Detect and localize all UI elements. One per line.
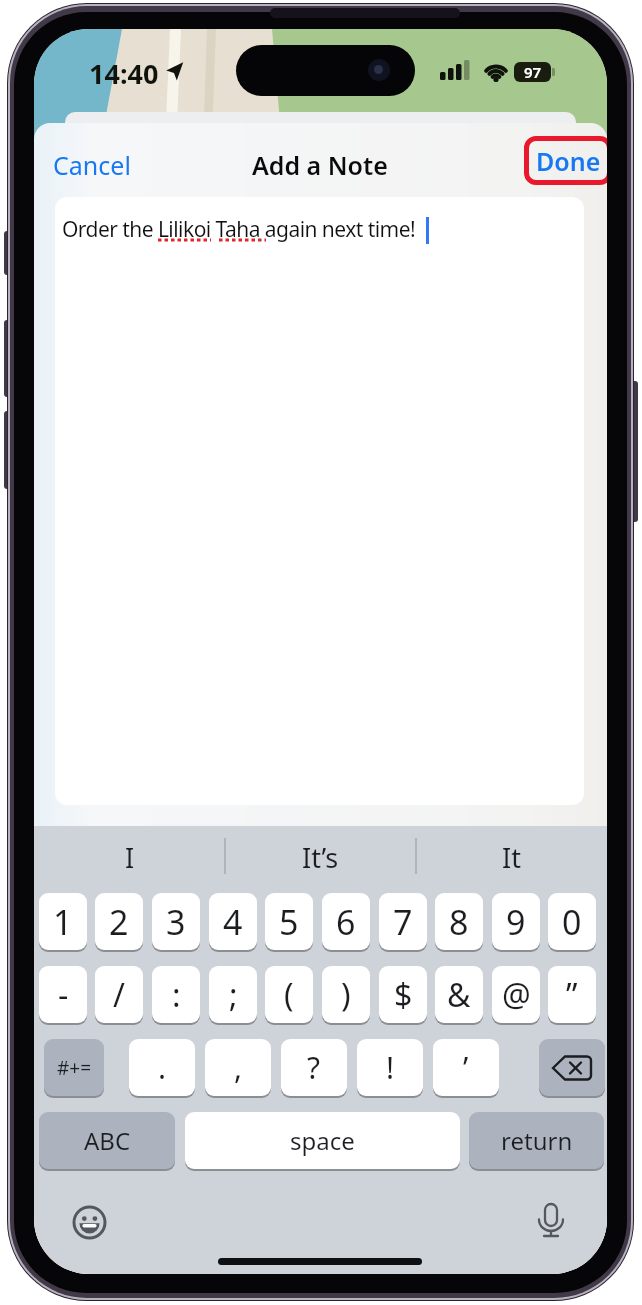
button[interactable]: space <box>185 1112 460 1169</box>
button[interactable]: / <box>95 966 143 1023</box>
button[interactable]: ( <box>265 966 313 1023</box>
staticText: 6 <box>336 899 356 945</box>
staticText: & <box>447 973 471 1017</box>
staticText: - <box>58 973 69 1017</box>
staticText: : <box>172 973 181 1017</box>
staticText: ” <box>566 973 578 1017</box>
staticText: ) <box>341 973 351 1017</box>
button[interactable]: I <box>34 828 225 886</box>
staticText: ’ <box>463 1047 469 1088</box>
staticText: I <box>125 839 135 876</box>
staticText: 0 <box>562 899 582 945</box>
button[interactable]: Done <box>524 136 607 185</box>
button[interactable]: 7 <box>379 893 427 950</box>
button[interactable] <box>539 1039 605 1096</box>
button[interactable]: 4 <box>209 893 257 950</box>
button[interactable]: 8 <box>435 893 483 950</box>
staticText: #+= <box>57 1055 92 1081</box>
button[interactable]: 6 <box>322 893 370 950</box>
button[interactable]: 1 <box>39 893 87 950</box>
staticText: 5 <box>279 899 299 945</box>
button[interactable]: ’ <box>433 1039 499 1096</box>
button[interactable]: ! <box>357 1039 423 1096</box>
button[interactable]: 0 <box>548 893 596 950</box>
staticText: , <box>234 1047 243 1088</box>
staticText: 4 <box>223 899 243 945</box>
staticText: It’s <box>302 839 339 876</box>
staticText: Order the Lilikoi Taha again next time! <box>62 215 416 244</box>
button[interactable]: $ <box>379 966 427 1023</box>
button[interactable]: #+= <box>44 1039 104 1096</box>
staticText: 14:40 <box>89 55 159 89</box>
staticText: ; <box>229 973 238 1017</box>
staticText: 9 <box>506 899 526 945</box>
button[interactable]: ABC <box>39 1112 175 1169</box>
staticText: 3 <box>166 899 186 945</box>
button[interactable]: It’s <box>225 828 416 886</box>
staticText: . <box>158 1047 167 1088</box>
button[interactable]: : <box>152 966 200 1023</box>
staticText: / <box>113 973 125 1017</box>
button[interactable]: @ <box>492 966 540 1023</box>
staticText: ? <box>307 1047 321 1088</box>
staticText: ABC <box>84 1124 131 1157</box>
button[interactable] <box>55 197 584 805</box>
button[interactable] <box>65 1198 113 1246</box>
button[interactable]: 5 <box>265 893 313 950</box>
button[interactable]: 2 <box>95 893 143 950</box>
button[interactable]: & <box>435 966 483 1023</box>
staticText: return <box>501 1124 573 1157</box>
staticText: 2 <box>109 899 129 945</box>
staticText: ( <box>284 973 294 1017</box>
staticText: It <box>502 839 521 876</box>
button[interactable]: ) <box>322 966 370 1023</box>
staticText: $ <box>394 973 413 1017</box>
button[interactable]: 9 <box>492 893 540 950</box>
button[interactable]: It <box>416 828 607 886</box>
staticText: Add a Note <box>252 148 388 182</box>
staticText: 97 <box>524 62 542 82</box>
staticText: Done <box>536 144 601 178</box>
staticText: @ <box>502 973 531 1017</box>
button[interactable] <box>527 1195 575 1247</box>
button[interactable]: ; <box>209 966 257 1023</box>
staticText: space <box>290 1124 355 1157</box>
button[interactable]: return <box>469 1112 604 1169</box>
button[interactable]: 3 <box>152 893 200 950</box>
staticText: 8 <box>449 899 469 945</box>
button[interactable]: , <box>205 1039 271 1096</box>
staticText: 7 <box>393 899 413 945</box>
button[interactable]: . <box>129 1039 195 1096</box>
button[interactable]: ? <box>281 1039 347 1096</box>
staticText: 1 <box>53 899 73 945</box>
staticText: Cancel <box>53 148 131 182</box>
staticText: ! <box>386 1047 395 1088</box>
button[interactable]: ” <box>548 966 596 1023</box>
button[interactable]: Cancel <box>42 139 142 191</box>
button[interactable]: - <box>39 966 87 1023</box>
